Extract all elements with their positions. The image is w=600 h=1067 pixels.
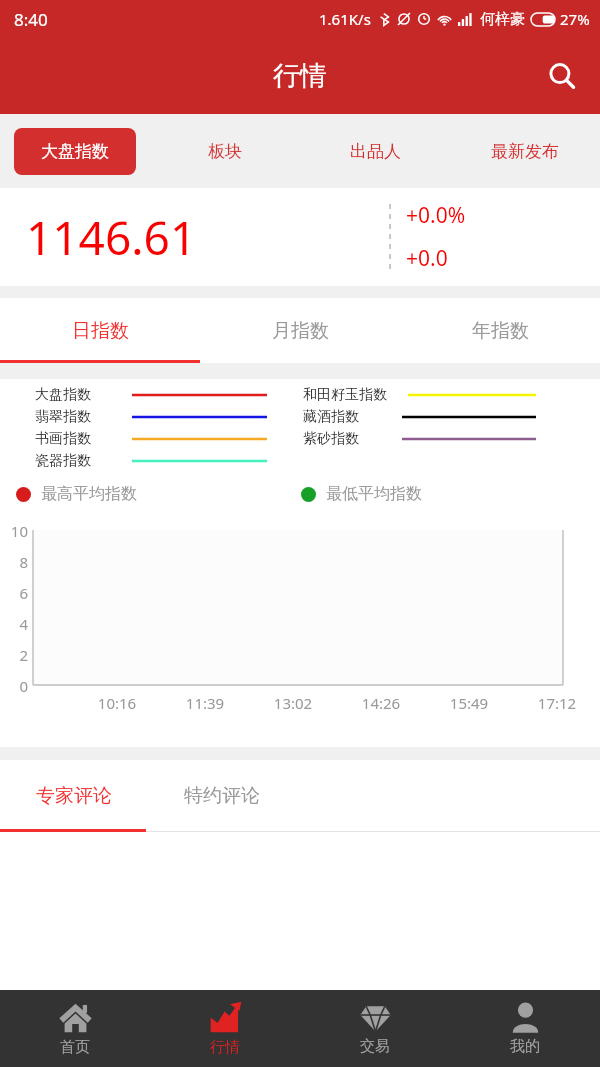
- staticText: 藏酒指数: [303, 408, 359, 426]
- staticText: 月指数: [272, 319, 329, 343]
- staticText: 紫砂指数: [303, 430, 359, 448]
- staticText: +0.0: [406, 244, 448, 273]
- staticText: 最高平均指数: [41, 484, 137, 504]
- staticText: 瓷器指数: [35, 452, 91, 470]
- staticText: 1.61K/s: [319, 9, 371, 29]
- staticText: 我的: [510, 1037, 540, 1056]
- staticText: 最新发布: [491, 141, 559, 162]
- button[interactable]: 交易: [300, 990, 450, 1067]
- button[interactable]: 板块: [150, 114, 300, 188]
- staticText: 17:12: [524, 693, 590, 713]
- staticText: 10: [2, 521, 28, 541]
- staticText: 11:39: [172, 693, 238, 713]
- button[interactable]: 月指数: [200, 298, 400, 363]
- button[interactable]: 首页: [0, 990, 150, 1067]
- staticText: 和田籽玉指数: [303, 386, 387, 404]
- button[interactable]: 出品人: [300, 114, 450, 188]
- button[interactable]: 行情: [150, 990, 300, 1067]
- staticText: 14:26: [348, 693, 414, 713]
- button[interactable]: 日指数: [0, 298, 200, 363]
- staticText: 专家评论: [36, 784, 112, 808]
- button[interactable]: 大盘指数: [14, 128, 136, 175]
- staticText: 出品人: [350, 141, 401, 162]
- staticText: 年指数: [472, 319, 529, 343]
- button[interactable]: 我的: [450, 990, 600, 1067]
- staticText: 何梓豪: [480, 10, 525, 29]
- staticText: +0.0%: [406, 201, 466, 230]
- staticText: 翡翠指数: [35, 408, 91, 426]
- staticText: 6: [2, 583, 28, 603]
- button[interactable]: Search: [538, 52, 586, 100]
- staticText: 10:16: [84, 693, 150, 713]
- button[interactable]: 专家评论: [0, 760, 148, 832]
- staticText: 书画指数: [35, 430, 91, 448]
- staticText: 首页: [60, 1038, 90, 1057]
- button[interactable]: 特约评论: [148, 760, 296, 832]
- staticText: 交易: [360, 1037, 390, 1056]
- staticText: 行情: [210, 1038, 240, 1057]
- button[interactable]: 最新发布: [450, 114, 600, 188]
- button[interactable]: 年指数: [400, 298, 600, 363]
- staticText: 13:02: [260, 693, 326, 713]
- staticText: 最低平均指数: [326, 484, 422, 504]
- staticText: 1146.61: [26, 206, 197, 269]
- staticText: 2: [2, 645, 28, 665]
- staticText: 4: [2, 614, 28, 634]
- staticText: 行情: [273, 59, 327, 93]
- staticText: 大盘指数: [41, 141, 109, 162]
- staticText: 0: [2, 676, 28, 696]
- staticText: 大盘指数: [35, 386, 91, 404]
- staticText: 15:49: [436, 693, 502, 713]
- staticText: 板块: [208, 141, 242, 162]
- staticText: 特约评论: [184, 784, 260, 808]
- staticText: 8:40: [14, 8, 48, 31]
- staticText: 日指数: [72, 319, 129, 343]
- staticText: 8: [2, 552, 28, 572]
- staticText: 27%: [560, 9, 590, 29]
